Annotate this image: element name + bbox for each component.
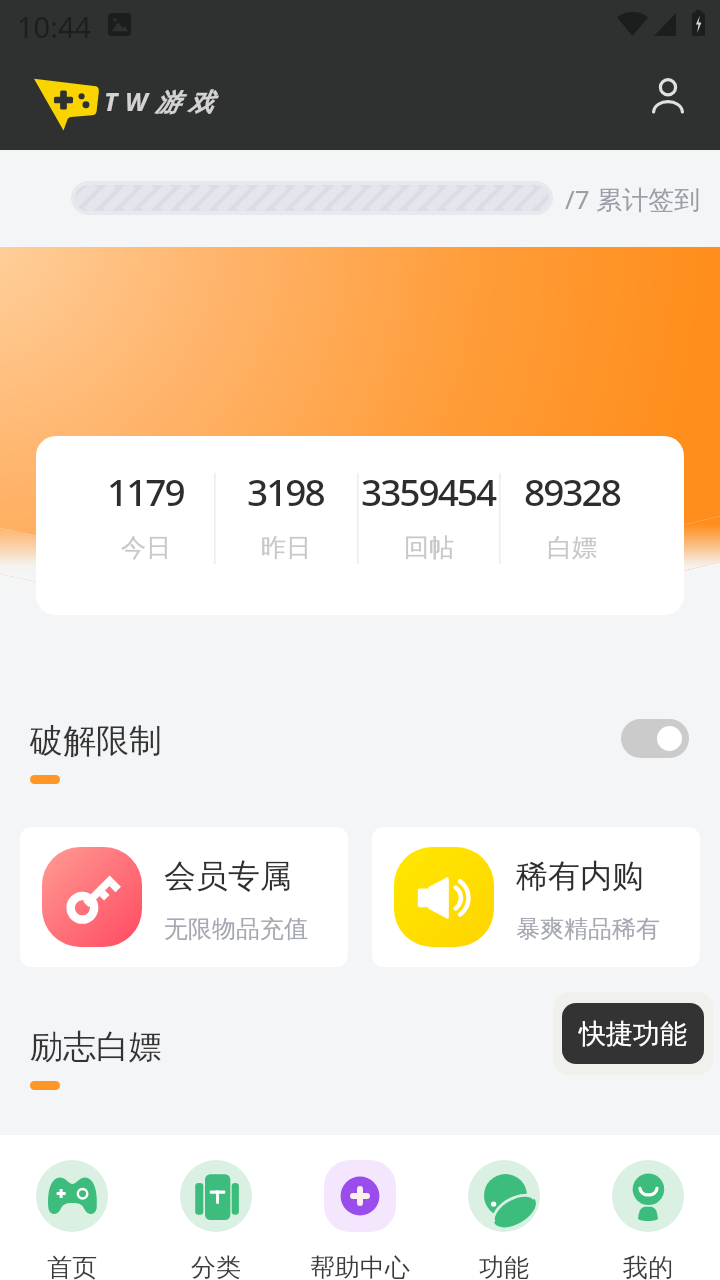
staticText: 无限物品充值 <box>164 914 308 944</box>
button[interactable]: Toggle 破解限制 <box>621 719 689 758</box>
button[interactable]: Account <box>644 72 692 120</box>
staticText: 快捷功能 <box>579 1017 687 1051</box>
staticText: 10:44 <box>17 7 92 46</box>
staticText: 今日 <box>121 532 171 563</box>
button[interactable]: 快捷功能 <box>553 992 713 1075</box>
button[interactable]: 首页 <box>0 1135 144 1280</box>
staticText: 功能 <box>479 1252 529 1280</box>
staticText: 昨日 <box>261 532 311 563</box>
staticText: 稀有内购 <box>516 856 644 896</box>
staticText: 1179 <box>107 466 184 516</box>
staticText: 89328 <box>524 466 620 516</box>
staticText: 回帖 <box>404 532 454 563</box>
button[interactable]: 会员专属 <box>20 827 348 967</box>
staticText: 帮助中心 <box>310 1252 410 1280</box>
staticText: 励志白嫖 <box>30 1026 162 1068</box>
staticText: 破解限制 <box>30 720 162 762</box>
staticText: 暴爽精品稀有 <box>516 914 660 944</box>
button[interactable]: 帮助中心 <box>288 1135 432 1280</box>
staticText: /7 累计签到 <box>565 181 701 215</box>
button[interactable]: 我的 <box>576 1135 720 1280</box>
button[interactable]: 功能 <box>432 1135 576 1280</box>
staticText: T W 游 戏 <box>104 84 214 118</box>
staticText: 首页 <box>47 1252 97 1280</box>
staticText: 我的 <box>623 1252 673 1280</box>
button[interactable]: 稀有内购 <box>372 827 700 967</box>
staticText: 会员专属 <box>164 856 292 896</box>
staticText: 3359454 <box>361 466 496 516</box>
button[interactable]: 分类 <box>144 1135 288 1280</box>
staticText: 白嫖 <box>547 532 597 563</box>
staticText: 分类 <box>191 1252 241 1280</box>
staticText: 3198 <box>247 466 324 516</box>
